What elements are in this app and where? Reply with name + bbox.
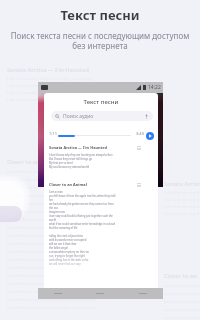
staticText: it we stay could build a flaring just to… bbox=[49, 214, 113, 218]
staticText: the sea bbox=[49, 206, 58, 210]
staticText: will we see it that clear bbox=[49, 242, 77, 246]
staticText: you fell down on your knees when they to… bbox=[7, 185, 97, 190]
staticText: My soul knows my rational world bbox=[49, 165, 89, 169]
staticText: with its words never corrupted bbox=[49, 238, 87, 242]
staticText: find the meaning of life bbox=[49, 226, 78, 230]
staticText: you fell down on your knees when they to… bbox=[7, 281, 97, 286]
staticText: what if we could somehow enter knowledge… bbox=[49, 222, 115, 226]
staticText: you fell down it from the apple tree lie… bbox=[49, 194, 116, 198]
staticText: something lost in the dark so far bbox=[49, 258, 89, 262]
staticText: you fell down on your knees when they to… bbox=[7, 241, 97, 246]
staticText: Closer to an Animal bbox=[164, 272, 200, 279]
staticText: you fell down on your knees when they to… bbox=[7, 225, 97, 230]
staticText: you fell down on your knees when they to… bbox=[7, 201, 97, 206]
staticText: run, trying to forget the night bbox=[49, 254, 85, 258]
staticText: you fell down on your knees when they to… bbox=[7, 297, 97, 302]
staticText: But I know they never tell things go bbox=[49, 157, 93, 161]
staticText: the fallen angel bbox=[49, 246, 68, 250]
staticText: you fell down on your knees when they to… bbox=[7, 169, 97, 174]
staticText: you fell down on your knees when they to… bbox=[7, 233, 97, 238]
staticText: Closer to an Animal bbox=[49, 182, 87, 187]
staticText: you fell down on your knees when they to… bbox=[7, 265, 97, 270]
staticText: her bbox=[49, 198, 54, 202]
staticText: you fell down on your knees when they to… bbox=[7, 273, 97, 278]
staticText: Поиск аудио bbox=[63, 113, 94, 120]
button[interactable]: Play bbox=[146, 132, 154, 140]
staticText: you fell down on your knees when they to… bbox=[7, 257, 97, 262]
staticText: Текст песни bbox=[44, 98, 158, 106]
staticText: I don't know why they are hunting me alw… bbox=[7, 90, 92, 95]
staticText: imagine now bbox=[49, 210, 65, 214]
staticText: I am a man bbox=[49, 190, 63, 194]
staticText: a snow white mystery on the run bbox=[49, 250, 89, 254]
staticText: Closer to an Animal bbox=[7, 158, 61, 165]
staticText: 3:40 bbox=[136, 131, 144, 136]
staticText: My feet are so tired bbox=[49, 161, 73, 165]
staticText: I don't know why they are hunting me alw… bbox=[7, 83, 92, 88]
staticText: we will never find our way bbox=[49, 262, 81, 266]
staticText: world bbox=[49, 218, 56, 222]
staticText: you fell down on your knees when they to… bbox=[7, 217, 97, 222]
staticText: we had already forgotten we are they can… bbox=[49, 202, 114, 206]
staticText: you fell down on your knees when they to… bbox=[7, 289, 97, 294]
staticText: 1:11 bbox=[49, 131, 57, 136]
staticText: I don't know why they are hunting me alw… bbox=[7, 97, 92, 102]
staticText: Sonata Arctica — I'm Haunted bbox=[7, 66, 89, 73]
staticText: you fell down on your knees when they to… bbox=[7, 249, 97, 254]
staticText: you fell down on your knees when they to… bbox=[7, 177, 97, 182]
staticText: Sonata Arctica — I'm Haunted bbox=[49, 145, 107, 150]
staticText: riding the crest of your time bbox=[49, 234, 84, 238]
staticText: Sonata Arctica — I'm Haunted bbox=[164, 180, 200, 187]
staticText: you fell down on your knees when they to… bbox=[7, 193, 97, 198]
staticText: you fell down on your knees when they to… bbox=[7, 209, 97, 214]
staticText: 14:22 bbox=[148, 84, 161, 91]
button[interactable]: Поиск аудио bbox=[51, 111, 153, 121]
staticText: Текст песни bbox=[60, 6, 140, 24]
staticText: I don't know why they are hunting me alw… bbox=[49, 153, 113, 157]
staticText: Поиск текста песни с последующим доступо… bbox=[0, 30, 200, 51]
